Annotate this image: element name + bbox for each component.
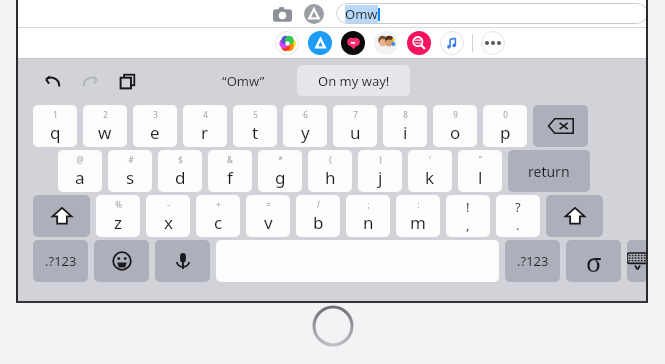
button[interactable]: 5 [233, 105, 277, 147]
staticText: + [216, 199, 221, 210]
button[interactable]: % [96, 195, 140, 237]
button[interactable]: Music [440, 31, 464, 55]
staticText: y [301, 121, 310, 144]
staticText: 5 [253, 109, 258, 120]
button[interactable]: : [396, 195, 440, 237]
staticText: a [75, 166, 85, 189]
button[interactable]: Digital Touch [341, 31, 365, 55]
button[interactable]: 2 [83, 105, 127, 147]
button[interactable]: 3 [133, 105, 177, 147]
staticText: u [350, 121, 361, 144]
button[interactable]: Memoji [374, 31, 398, 55]
button[interactable]: ? [496, 195, 540, 237]
button[interactable]: App Store [301, 1, 327, 27]
button[interactable]: / [296, 195, 340, 237]
button[interactable]: 4 [183, 105, 227, 147]
staticText: d [175, 166, 186, 189]
staticText: j [378, 166, 383, 189]
staticText: # [128, 154, 134, 165]
staticText: ” [479, 154, 482, 165]
button[interactable]: return [508, 150, 590, 192]
staticText: 2 [103, 109, 108, 120]
button[interactable]: Shift [33, 195, 90, 237]
button[interactable]: 7 [333, 105, 377, 147]
staticText: σ [586, 244, 602, 279]
staticText: 8 [403, 109, 408, 120]
staticText: q [50, 121, 61, 144]
button[interactable]: Handwriting [566, 240, 621, 282]
button[interactable]: Home [313, 306, 353, 346]
button[interactable]: Images [407, 31, 431, 55]
button[interactable]: Backspace [533, 105, 588, 147]
staticText: i [403, 121, 408, 144]
staticText: % [115, 199, 122, 210]
button[interactable]: + [196, 195, 240, 237]
staticText: p [500, 121, 511, 144]
button[interactable]: “Omw” [212, 68, 275, 94]
button[interactable]: @ [58, 150, 102, 192]
staticText: “Omw” [222, 72, 265, 90]
button[interactable]: * [258, 150, 302, 192]
button[interactable]: ‘ [408, 150, 452, 192]
button[interactable]: Redo [75, 66, 105, 96]
staticText: h [325, 166, 336, 189]
staticText: ) [379, 154, 382, 165]
staticText: * [278, 154, 283, 165]
button[interactable]: On my way! [297, 65, 410, 96]
staticText: f [227, 166, 233, 189]
staticText: t [252, 121, 259, 144]
staticText: x [164, 211, 173, 234]
button[interactable]: $ [158, 150, 202, 192]
button[interactable]: Shift [546, 195, 603, 237]
button[interactable]: Hide keyboard [627, 240, 648, 282]
button[interactable]: Omw [336, 3, 648, 24]
staticText: l [478, 166, 483, 189]
staticText: & [227, 154, 233, 165]
staticText: m [410, 211, 426, 234]
button[interactable]: Undo [37, 66, 67, 96]
button[interactable]: 6 [283, 105, 327, 147]
staticText: 3 [153, 109, 158, 120]
button[interactable]: - [146, 195, 190, 237]
staticText: Omw [345, 5, 378, 23]
staticText: ! [466, 198, 470, 216]
button[interactable]: Paste [112, 66, 142, 96]
button[interactable]: .?123 [33, 240, 88, 282]
staticText: 6 [303, 109, 308, 120]
button[interactable]: ( [308, 150, 352, 192]
button[interactable]: ; [346, 195, 390, 237]
staticText: b [313, 211, 324, 234]
button[interactable]: ) [358, 150, 402, 192]
button[interactable]: # [108, 150, 152, 192]
staticText: : [417, 199, 420, 210]
staticText: On my way! [318, 72, 390, 90]
button[interactable]: App Store [308, 31, 332, 55]
staticText: 7 [353, 109, 358, 120]
button[interactable]: Dictation [155, 240, 210, 282]
staticText: 0 [503, 109, 508, 120]
button[interactable]: & [208, 150, 252, 192]
button[interactable]: ! [446, 195, 490, 237]
button[interactable]: Camera [269, 1, 295, 27]
staticText: ‘ [429, 154, 431, 165]
button[interactable]: More apps [481, 31, 505, 55]
button[interactable]: .?123 [505, 240, 560, 282]
staticText: .?123 [45, 252, 77, 270]
staticText: 1 [53, 109, 58, 120]
button[interactable]: Photos [275, 31, 299, 55]
staticText: k [425, 166, 435, 189]
staticText: 9 [453, 109, 458, 120]
staticText: ( [329, 154, 332, 165]
button[interactable]: 8 [383, 105, 427, 147]
button[interactable]: 0 [483, 105, 527, 147]
button[interactable]: Emoji [94, 240, 149, 282]
staticText: o [450, 121, 461, 144]
button[interactable]: ” [458, 150, 502, 192]
button[interactable]: = [246, 195, 290, 237]
staticText: z [114, 211, 122, 234]
staticText: ? [515, 198, 521, 216]
button[interactable]: 1 [33, 105, 77, 147]
staticText: = [266, 199, 271, 210]
button[interactable]: 9 [433, 105, 477, 147]
